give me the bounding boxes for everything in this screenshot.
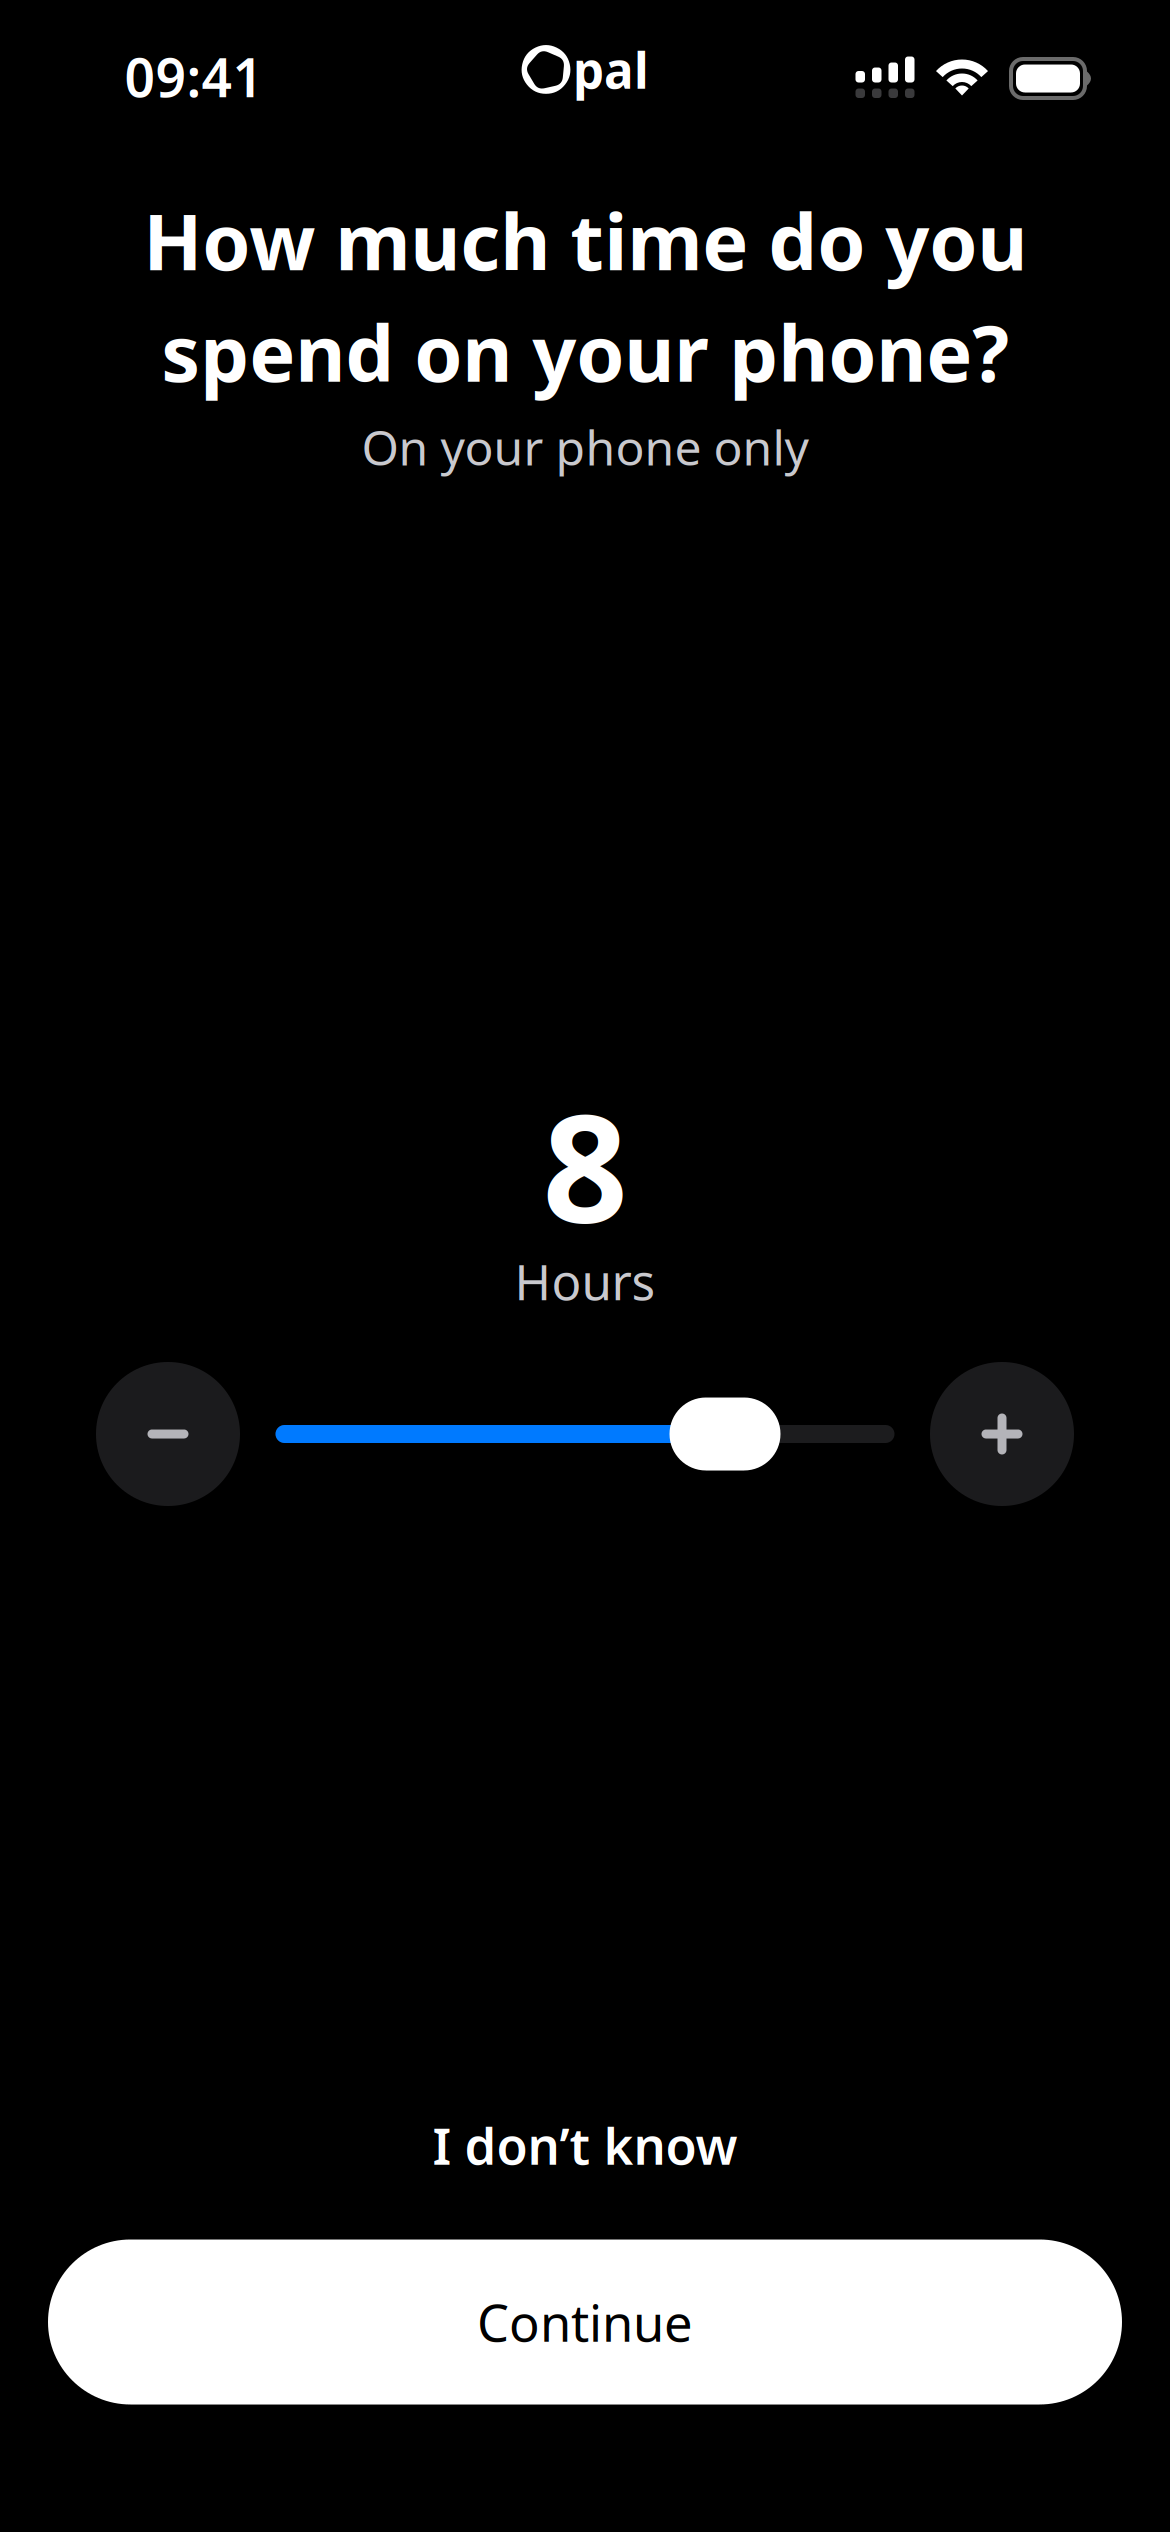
staticText: Hours (514, 1248, 655, 1314)
button[interactable]: Continue (48, 2239, 1122, 2404)
button[interactable]: Decrease hours (96, 1362, 240, 1506)
staticText: I don’t know (432, 2111, 737, 2179)
button[interactable]: Hours per day: 8 (275, 1362, 894, 1506)
button[interactable]: Increase hours (930, 1362, 1074, 1506)
button[interactable]: I don’t know (325, 2097, 845, 2193)
staticText: 8 (542, 1066, 627, 1264)
staticText: On your phone only (361, 415, 808, 479)
staticText: Continue (477, 2288, 693, 2356)
staticText: How much time do you spend on your phone… (143, 189, 1027, 403)
staticText: pal (573, 37, 649, 102)
staticText: 09:41 (124, 41, 263, 112)
